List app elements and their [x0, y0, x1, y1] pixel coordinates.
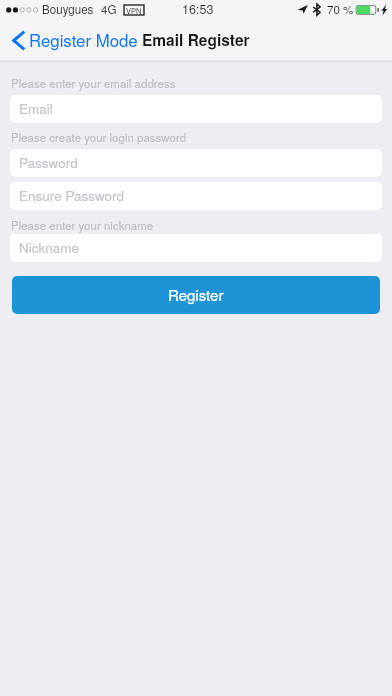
staticText: 16:53 — [182, 0, 214, 18]
button[interactable]: Register — [12, 276, 380, 314]
staticText: Register — [168, 284, 224, 305]
staticText: Nickname — [19, 238, 80, 257]
button[interactable]: Back to Register Mode — [0, 28, 142, 52]
button[interactable]: Nickname — [10, 234, 382, 262]
button[interactable]: Email — [10, 95, 382, 123]
staticText: VPN — [126, 5, 142, 15]
button[interactable]: Ensure Password — [10, 182, 382, 210]
staticText: Please enter your email address — [11, 75, 176, 91]
staticText: Email Register — [142, 29, 250, 51]
staticText: 70 % — [327, 1, 354, 18]
staticText: Ensure Password — [19, 186, 125, 205]
staticText: 4G — [101, 1, 117, 18]
button[interactable]: Password — [10, 149, 382, 177]
staticText: Register Mode — [29, 28, 138, 52]
staticText: Email — [19, 99, 53, 118]
staticText: Password — [19, 153, 78, 172]
staticText: Bouygues — [42, 1, 94, 18]
staticText: Please enter your nickname — [11, 217, 154, 233]
staticText: Please create your login password — [11, 129, 187, 145]
